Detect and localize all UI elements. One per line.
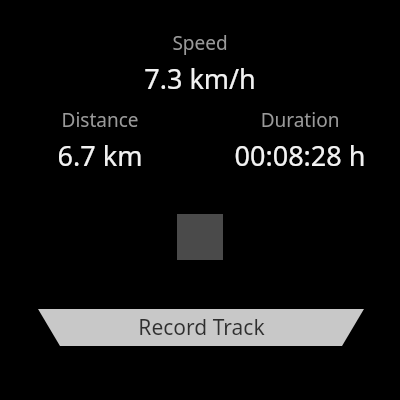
staticText: 7.3 km/h bbox=[0, 60, 400, 97]
staticText: Duration bbox=[200, 107, 400, 133]
staticText: 00:08:28 h bbox=[200, 137, 400, 174]
staticText: Speed bbox=[0, 30, 400, 56]
staticText: Distance bbox=[0, 107, 200, 133]
staticText: 6.7 km bbox=[0, 137, 200, 174]
staticText: Record Track bbox=[138, 313, 265, 342]
button[interactable]: Record Track bbox=[38, 309, 364, 346]
